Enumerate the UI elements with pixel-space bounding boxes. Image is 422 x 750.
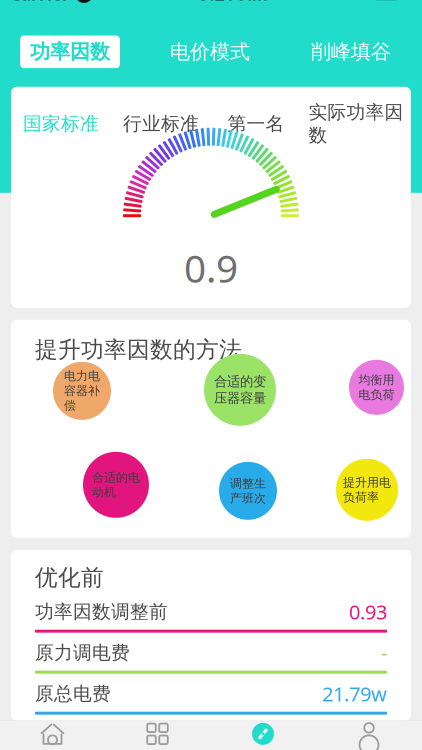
staticText: 9:21 AM [200, 0, 268, 5]
button[interactable]: 调整生产班次 [219, 462, 277, 520]
staticText: 实际功率因数 [308, 101, 403, 147]
staticText: 电力电容器补偿 [64, 369, 100, 413]
staticText: 功率因数 [30, 39, 110, 64]
staticText: 削峰填谷 [311, 39, 391, 64]
staticText: 提升用电负荷率 [343, 475, 391, 505]
staticText: 0.9 [184, 242, 238, 293]
staticText: 均衡用电负荷 [358, 373, 394, 402]
button[interactable]: 行业标准 [111, 112, 211, 135]
button[interactable]: 国家标准 [11, 112, 111, 135]
button[interactable]: 实际功率因数 [301, 101, 411, 147]
staticText: 合适的变压器容量 [214, 373, 266, 406]
button[interactable]: 电力电容器补偿 [53, 362, 111, 420]
staticText: 提升功率因数的方法 [35, 336, 242, 364]
staticText: Carrier [10, 0, 70, 5]
button[interactable]: 优化 [210, 721, 316, 750]
button[interactable]: 分项 [105, 721, 210, 750]
staticText: 原总电费 [35, 682, 111, 705]
staticText: 我 [361, 749, 377, 750]
button[interactable]: 我 [316, 721, 422, 750]
staticText: 电价模式 [170, 39, 250, 64]
staticText: 合适的电动机 [92, 470, 140, 500]
button[interactable]: 第一名 [211, 112, 301, 135]
button[interactable]: 电价模式 [140, 39, 280, 64]
staticText: 0.93 [349, 598, 387, 625]
button[interactable]: 首页 [0, 721, 105, 750]
button[interactable]: 合适的电动机 [83, 452, 149, 518]
staticText: 国家标准 [23, 112, 99, 135]
staticText: 第一名 [227, 112, 284, 135]
staticText: 优化前 [35, 564, 104, 592]
button[interactable]: 提升用电负荷率 [336, 459, 398, 521]
button[interactable]: 合适的变压器容量 [204, 354, 276, 426]
button[interactable]: 削峰填谷 [280, 39, 422, 64]
staticText: 原力调电费 [35, 641, 130, 664]
staticText: 21.79w [322, 680, 387, 707]
staticText: - [381, 639, 387, 666]
staticText: 调整生产班次 [230, 476, 266, 506]
staticText: 行业标准 [123, 112, 199, 135]
staticText: 功率因数调整前 [35, 600, 168, 623]
button[interactable]: 均衡用电负荷 [349, 360, 404, 415]
button[interactable]: 功率因数 [20, 35, 120, 68]
